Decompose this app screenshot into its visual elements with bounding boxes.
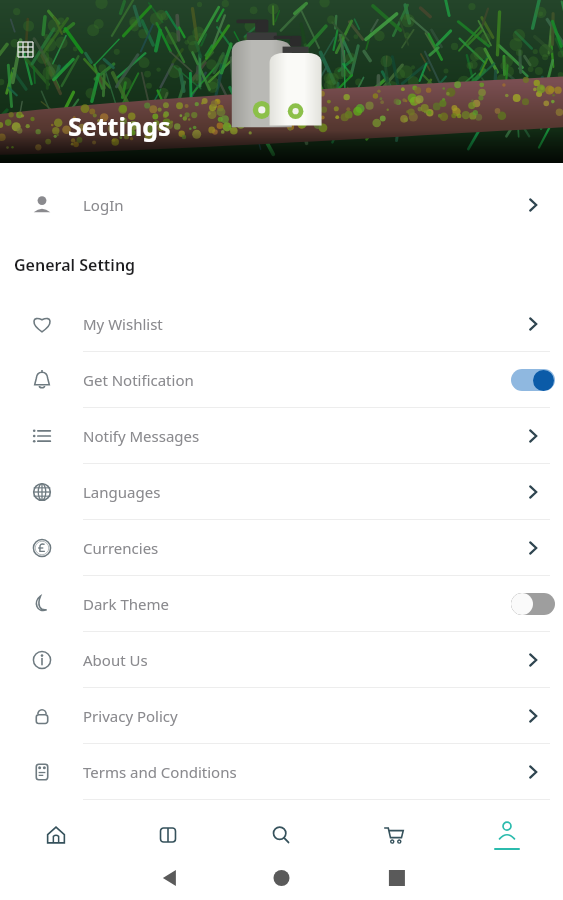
staticText: Get Notification: [83, 370, 503, 390]
button[interactable]: Cart: [337, 810, 450, 860]
button[interactable]: Terms and Conditions: [0, 744, 563, 799]
staticText: Currencies: [83, 538, 503, 558]
staticText: General Setting: [14, 254, 136, 276]
button[interactable]: Search: [224, 810, 337, 860]
button[interactable]: Dark Theme: [0, 576, 563, 631]
staticText: Terms and Conditions: [83, 762, 503, 782]
button[interactable]: Currencies: [0, 520, 563, 575]
staticText: Notify Messages: [83, 426, 503, 446]
button[interactable]: Home: [0, 810, 112, 860]
staticText: My Wishlist: [83, 314, 503, 334]
button[interactable]: Languages: [0, 464, 563, 519]
staticText: About Us: [83, 650, 503, 670]
button[interactable]: Menu: [12, 36, 38, 62]
button[interactable]: LogIn: [0, 177, 563, 232]
staticText: LogIn: [83, 195, 503, 215]
button[interactable]: My Wishlist: [0, 296, 563, 351]
button[interactable]: About Us: [0, 632, 563, 687]
staticText: Languages: [83, 482, 503, 502]
button[interactable]: Notify Messages: [0, 408, 563, 463]
button[interactable]: Categories: [112, 810, 224, 860]
button[interactable]: Profile: [450, 810, 563, 860]
staticText: Settings: [68, 109, 171, 143]
staticText: Dark Theme: [83, 594, 503, 614]
staticText: Privacy Policy: [83, 706, 503, 726]
button[interactable]: Privacy Policy: [0, 688, 563, 743]
button[interactable]: Get Notification: [0, 352, 563, 407]
